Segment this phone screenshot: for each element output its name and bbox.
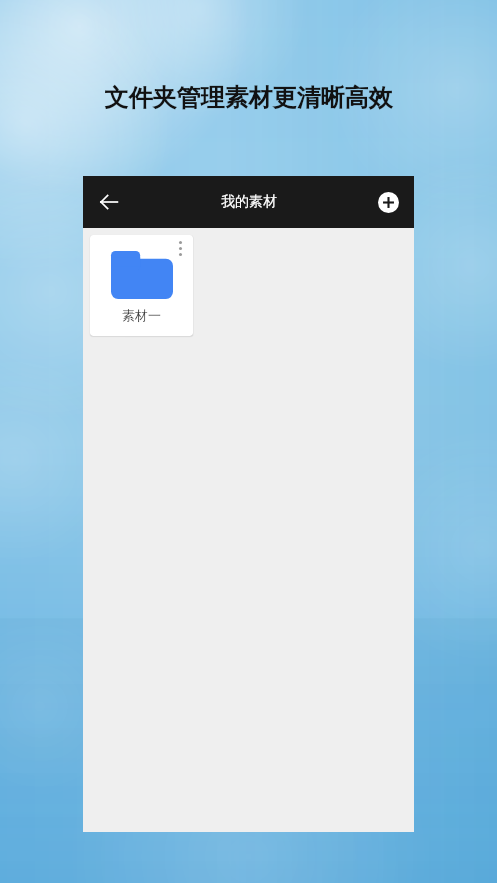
button[interactable]: Back xyxy=(87,180,131,224)
button[interactable]: More options xyxy=(167,235,193,261)
staticText: 素材一 xyxy=(122,307,161,323)
button[interactable]: Add folder xyxy=(368,182,408,222)
staticText: 我的素材 xyxy=(221,193,277,211)
button[interactable]: More options xyxy=(90,235,193,336)
staticText: 文件夹管理素材更清晰高效 xyxy=(0,83,497,113)
